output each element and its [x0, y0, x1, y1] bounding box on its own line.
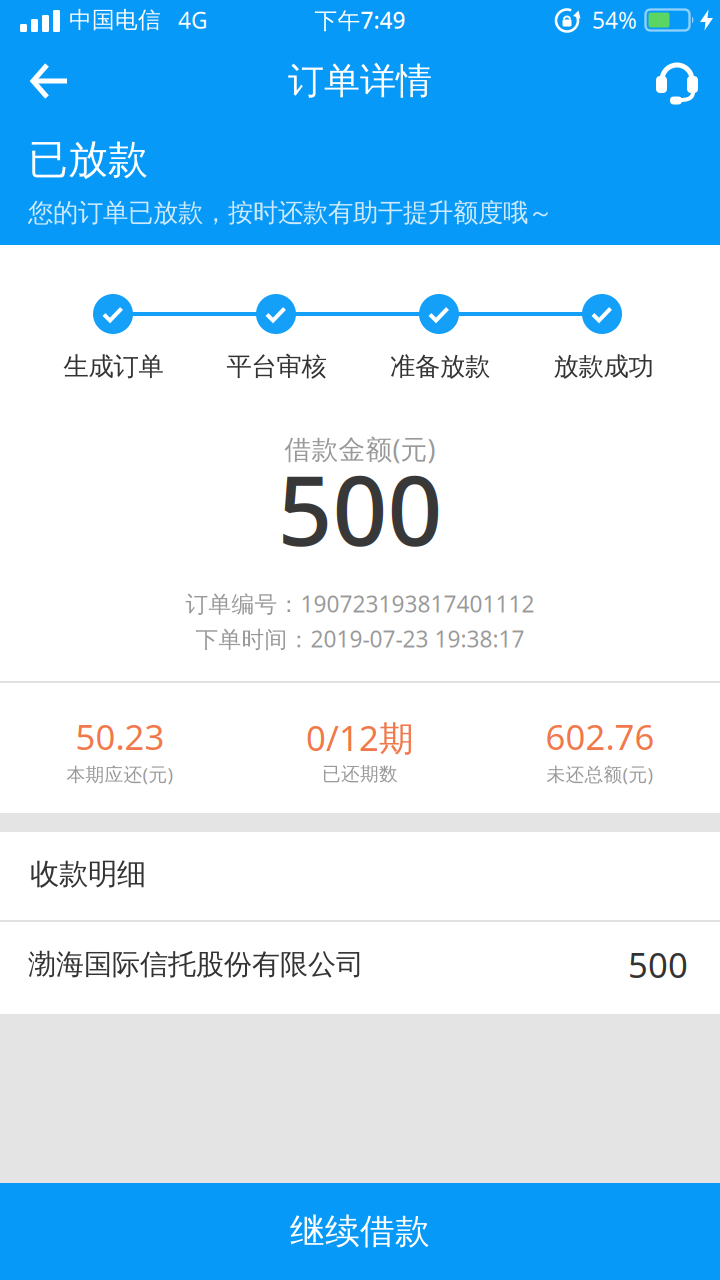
staticText: 中国电信: [69, 6, 161, 34]
staticText: 已放款: [28, 135, 148, 184]
staticText: 500: [277, 445, 442, 572]
staticText: 准备放款: [390, 351, 490, 382]
staticText: 未还总额(元): [546, 762, 653, 786]
staticText: 下午7:49: [314, 5, 405, 35]
staticText: 0/12期: [306, 714, 414, 760]
staticText: 500: [628, 941, 688, 987]
staticText: 生成订单: [63, 351, 163, 382]
staticText: 已还期数: [322, 763, 398, 785]
staticText: 借款金额(元): [284, 431, 435, 466]
button[interactable]: Back: [0, 63, 70, 99]
staticText: 放款成功: [553, 351, 653, 382]
staticText: 订单详情: [288, 59, 432, 103]
staticText: 54%: [592, 5, 637, 35]
staticText: 平台审核: [226, 351, 326, 382]
staticText: 50.23: [75, 714, 164, 760]
staticText: 602.76: [545, 714, 654, 760]
staticText: 4G: [178, 5, 208, 35]
staticText: 订单编号：190723193817401112: [185, 588, 534, 619]
staticText: 渤海国际信托股份有限公司: [28, 947, 364, 982]
button[interactable]: Customer service: [656, 60, 720, 102]
staticText: 本期应还(元): [66, 762, 173, 786]
staticText: 收款明细: [30, 856, 146, 892]
button[interactable]: 继续借款: [0, 1183, 720, 1280]
staticText: 您的订单已放款，按时还款有助于提升额度哦～: [28, 197, 553, 228]
staticText: 继续借款: [290, 1210, 430, 1253]
staticText: 下单时间：2019-07-23 19:38:17: [195, 624, 524, 654]
